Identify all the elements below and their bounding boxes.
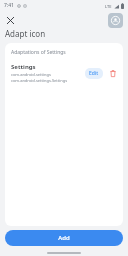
button[interactable]: Delete [107,67,119,79]
button[interactable]: Close [3,13,17,27]
staticText: Add [58,234,70,242]
staticText: Adapt icon [5,28,46,39]
button[interactable]: Edit [85,68,103,79]
staticText: Settings [11,63,36,71]
button[interactable]: Profile [108,13,123,28]
button[interactable]: Add [5,230,123,246]
button[interactable]: Settings [5,62,123,85]
staticText: com.android.settings.Settings [11,78,68,83]
staticText: Edit [89,70,99,77]
staticText: LTE [105,4,112,9]
staticText: Adaptations of Settings [11,49,66,56]
staticText: com.android.settings [11,72,51,77]
staticText: 7:41 [4,2,14,9]
